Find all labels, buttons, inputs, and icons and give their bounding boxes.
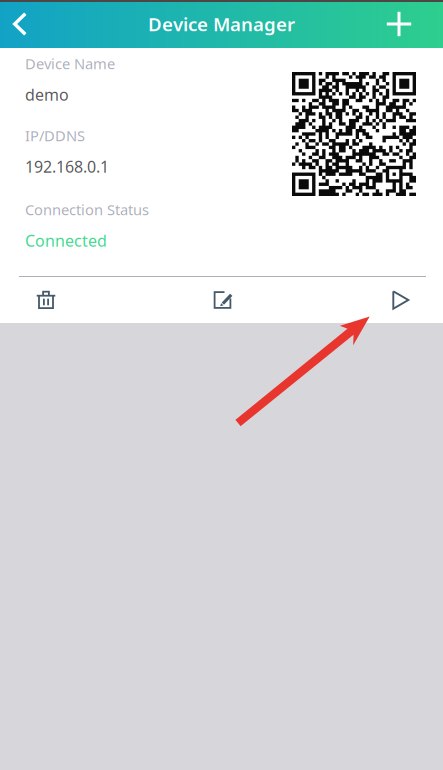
staticText: Device Name <box>25 54 115 73</box>
button[interactable]: Back <box>0 0 40 48</box>
staticText: demo <box>25 84 69 105</box>
button[interactable]: Connect <box>373 278 429 322</box>
button[interactable]: Delete <box>18 278 74 322</box>
staticText: Connected <box>25 230 107 251</box>
staticText: Connection Status <box>25 200 149 219</box>
button[interactable]: Edit <box>195 278 251 322</box>
staticText: 192.168.0.1 <box>25 156 109 177</box>
button[interactable]: Add device <box>377 0 421 48</box>
staticText: Device Manager <box>148 12 295 36</box>
staticText: IP/DDNS <box>25 126 85 145</box>
